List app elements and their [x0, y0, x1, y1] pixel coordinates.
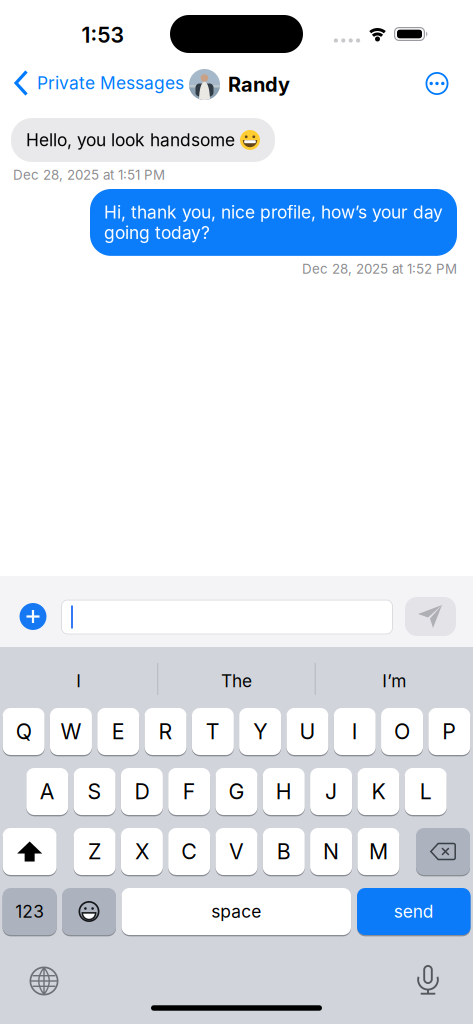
staticText: G [228, 779, 244, 804]
button[interactable]: U [286, 707, 328, 756]
staticText: W [60, 719, 81, 744]
button[interactable]: I [334, 707, 376, 756]
button[interactable]: Y [239, 707, 281, 756]
button[interactable]: X [121, 827, 163, 876]
button[interactable]: 123 [3, 887, 57, 936]
button[interactable]: Emoji [62, 887, 116, 936]
staticText: F [183, 779, 196, 804]
staticText: M [369, 839, 388, 864]
staticText: Z [88, 839, 101, 864]
staticText: D [134, 779, 149, 804]
button[interactable]: M [357, 827, 399, 876]
button[interactable]: More [425, 72, 448, 95]
button[interactable]: space [122, 887, 351, 936]
staticText: N [323, 839, 339, 864]
button[interactable]: Next keyboard [29, 966, 58, 995]
button[interactable]: G [215, 767, 257, 816]
staticText: The [221, 671, 252, 691]
staticText: R [158, 719, 172, 744]
button[interactable]: Send [405, 597, 456, 636]
button[interactable]: C [168, 827, 210, 876]
staticText: H [276, 779, 292, 804]
button[interactable]: I [4, 658, 154, 704]
staticText: 1:53 [81, 22, 124, 48]
staticText: Hello, you look handsome [26, 130, 235, 150]
button[interactable]: D [121, 767, 163, 816]
button[interactable]: I’m [319, 658, 469, 704]
button[interactable]: Shift [3, 827, 57, 876]
staticText: I [352, 719, 358, 744]
button[interactable]: Dictation [417, 964, 439, 995]
staticText: T [206, 719, 220, 744]
staticText: Q [16, 719, 32, 744]
staticText: B [277, 839, 291, 864]
button[interactable]: Add attachment [19, 603, 46, 630]
staticText: V [229, 839, 244, 864]
staticText: Randy [228, 73, 290, 96]
button[interactable]: L [405, 767, 447, 816]
staticText: E [112, 719, 125, 744]
button[interactable]: The [161, 658, 311, 704]
button[interactable]: O [381, 707, 423, 756]
staticText: Dec 28, 2025 at 1:51 PM [13, 167, 165, 183]
button[interactable]: Z [74, 827, 116, 876]
staticText: space [211, 901, 261, 922]
staticText: C [181, 839, 197, 864]
button[interactable]: Randy [189, 69, 290, 100]
button[interactable]: J [310, 767, 352, 816]
button[interactable]: E [97, 707, 139, 756]
button[interactable]: Private Messages [14, 70, 184, 96]
button[interactable]: A [26, 767, 68, 816]
staticText: J [325, 779, 337, 804]
button[interactable]: Delete [416, 827, 470, 876]
staticText: Hi, thank you, nice profile, how’s your … [104, 202, 443, 243]
button[interactable]: Q [3, 707, 45, 756]
button[interactable]: S [74, 767, 116, 816]
staticText: U [299, 719, 315, 744]
button[interactable]: send [357, 887, 471, 936]
staticText: send [394, 901, 434, 922]
button[interactable]: Message field [61, 599, 393, 634]
staticText: I [76, 671, 81, 691]
button[interactable]: H [263, 767, 305, 816]
button[interactable]: N [310, 827, 352, 876]
staticText: P [442, 719, 456, 744]
staticText: 123 [15, 901, 44, 922]
staticText: Dec 28, 2025 at 1:52 PM [302, 261, 457, 277]
button[interactable]: P [428, 707, 470, 756]
staticText: O [394, 719, 410, 744]
staticText: X [135, 839, 149, 864]
staticText: A [40, 779, 55, 804]
button[interactable]: B [263, 827, 305, 876]
staticText: S [88, 779, 102, 804]
button[interactable]: F [168, 767, 210, 816]
button[interactable]: W [50, 707, 92, 756]
staticText: Private Messages [37, 73, 184, 93]
button[interactable]: R [144, 707, 186, 756]
button[interactable]: T [192, 707, 234, 756]
staticText: K [371, 779, 385, 804]
staticText: I’m [382, 671, 406, 691]
button[interactable]: K [357, 767, 399, 816]
staticText: Y [253, 719, 267, 744]
button[interactable]: V [215, 827, 257, 876]
staticText: L [420, 779, 432, 804]
